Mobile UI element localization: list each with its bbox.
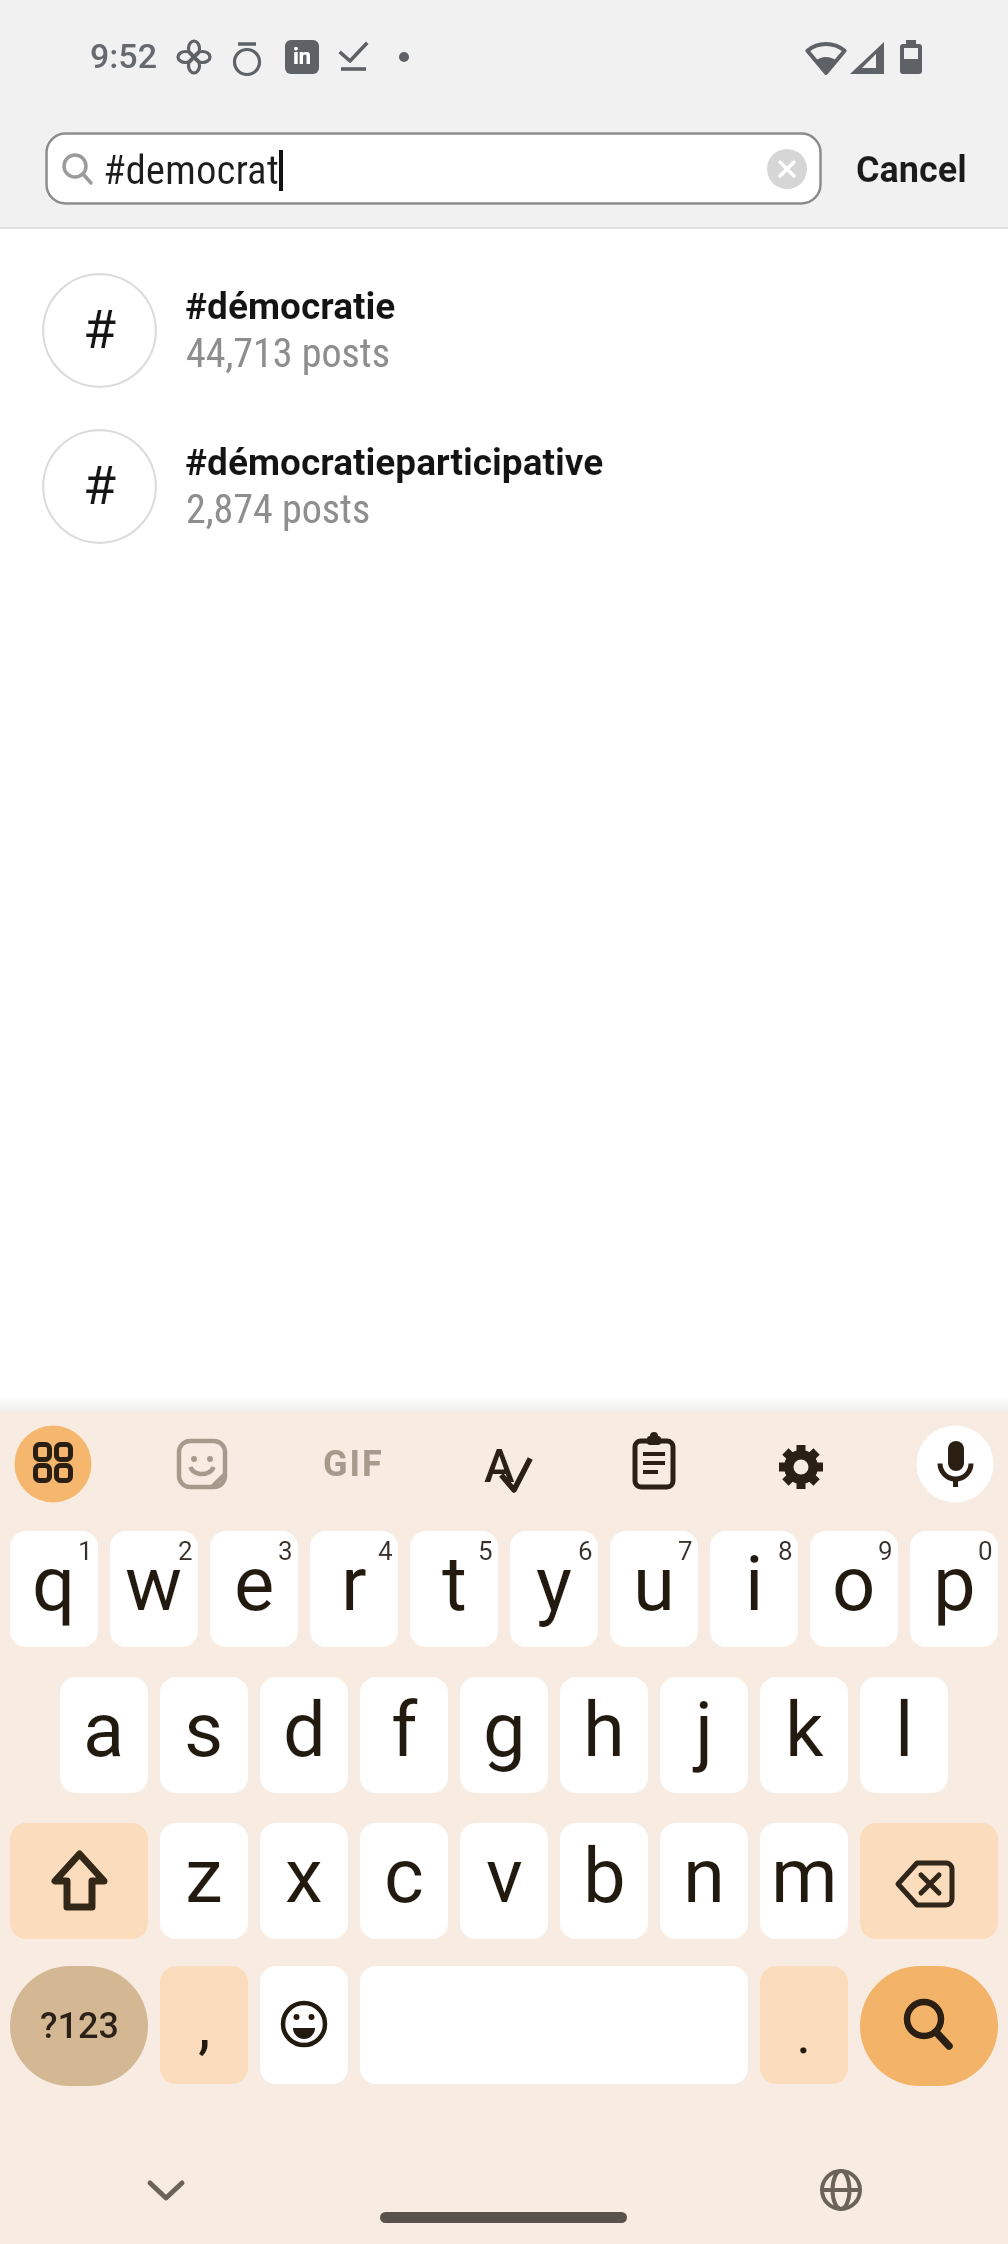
button[interactable]: r — [310, 1531, 398, 1647]
staticText: GIF — [323, 1443, 384, 1485]
staticText: A — [484, 1439, 515, 1493]
button[interactable] — [158, 1420, 246, 1508]
staticText: x — [285, 1831, 323, 1920]
staticText: 9:52 — [90, 36, 157, 76]
staticText: 9 — [878, 1536, 893, 1566]
staticText: v — [486, 1831, 523, 1920]
staticText: u — [633, 1539, 675, 1628]
staticText: 5 — [478, 1536, 493, 1566]
staticText: 44,713 posts — [186, 330, 390, 377]
staticText: p — [933, 1539, 976, 1628]
staticText: 6 — [578, 1536, 593, 1566]
button[interactable]: y — [510, 1531, 598, 1647]
staticText: . — [796, 1999, 812, 2067]
staticText: a — [83, 1685, 125, 1774]
staticText: # — [83, 298, 117, 361]
staticText: z — [185, 1831, 223, 1920]
staticText: r — [341, 1539, 367, 1628]
button[interactable]: i — [710, 1531, 798, 1647]
staticText: j — [695, 1685, 714, 1774]
button[interactable]: g — [460, 1677, 548, 1793]
button[interactable] — [911, 1420, 999, 1508]
staticText: w — [125, 1539, 183, 1628]
staticText: q — [32, 1539, 76, 1628]
staticText: #démocratie — [185, 285, 396, 328]
staticText: 2,874 posts — [186, 486, 371, 533]
button[interactable]: c — [360, 1823, 448, 1939]
button[interactable]: l — [860, 1677, 948, 1793]
staticText: # — [83, 454, 117, 517]
button[interactable] — [45, 132, 822, 205]
staticText: 3 — [278, 1536, 293, 1566]
button[interactable]: e — [210, 1531, 298, 1647]
staticText: #démocratieparticipative — [185, 441, 604, 484]
button[interactable]: h — [560, 1677, 648, 1793]
button[interactable]: f — [360, 1677, 448, 1793]
button[interactable] — [10, 1823, 148, 1939]
button[interactable]: z — [160, 1823, 248, 1939]
button[interactable] — [610, 1420, 698, 1508]
button[interactable]: m — [760, 1823, 848, 1939]
staticText: i — [745, 1539, 764, 1628]
button[interactable]: . — [760, 1966, 848, 2084]
staticText: d — [283, 1685, 326, 1774]
staticText: 2 — [178, 1536, 193, 1566]
staticText: 1 — [78, 1536, 93, 1566]
staticText: m — [771, 1831, 838, 1920]
staticText: #democrat — [103, 146, 279, 194]
button[interactable]: ?123 — [10, 1966, 148, 2086]
button[interactable]: # — [0, 252, 1008, 408]
button[interactable] — [9, 1420, 97, 1508]
button[interactable]: Cancel — [840, 135, 980, 201]
button[interactable]: b — [560, 1823, 648, 1939]
staticText: y — [536, 1539, 572, 1628]
button[interactable]: x — [260, 1823, 348, 1939]
button[interactable] — [260, 1966, 348, 2084]
staticText: b — [583, 1831, 626, 1920]
staticText: t — [442, 1539, 467, 1628]
button[interactable]: a — [60, 1677, 148, 1793]
button[interactable]: v — [460, 1823, 548, 1939]
staticText: f — [391, 1685, 418, 1774]
staticText: o — [832, 1539, 876, 1628]
button[interactable]: o — [810, 1531, 898, 1647]
button[interactable] — [761, 1420, 849, 1508]
button[interactable] — [801, 2150, 881, 2230]
button[interactable]: GIF — [309, 1420, 397, 1508]
button[interactable]: t — [410, 1531, 498, 1647]
staticText: 8 — [778, 1536, 793, 1566]
staticText: in — [293, 44, 312, 70]
button[interactable]: j — [660, 1677, 748, 1793]
staticText: n — [683, 1831, 725, 1920]
button[interactable] — [126, 2150, 206, 2230]
staticText: , — [198, 1988, 211, 2063]
button[interactable]: q — [10, 1531, 98, 1647]
button[interactable]: # — [0, 408, 1008, 564]
staticText: g — [483, 1685, 526, 1774]
button[interactable]: w — [110, 1531, 198, 1647]
staticText: e — [234, 1539, 275, 1628]
staticText: h — [583, 1685, 625, 1774]
staticText: 7 — [678, 1536, 693, 1566]
button[interactable]: p — [910, 1531, 998, 1647]
staticText: 4 — [378, 1536, 393, 1566]
button[interactable]: d — [260, 1677, 348, 1793]
staticText: ?123 — [40, 2005, 119, 2047]
staticText: 0 — [978, 1536, 993, 1566]
button[interactable]: s — [160, 1677, 248, 1793]
staticText: c — [384, 1831, 424, 1920]
button[interactable] — [860, 1966, 998, 2086]
button[interactable]: k — [760, 1677, 848, 1793]
button[interactable]: , — [160, 1966, 248, 2084]
staticText: s — [184, 1685, 224, 1774]
staticText: l — [895, 1685, 914, 1774]
button[interactable]: n — [660, 1823, 748, 1939]
staticText: k — [785, 1685, 824, 1774]
button[interactable]: u — [610, 1531, 698, 1647]
button[interactable]: A — [460, 1420, 548, 1508]
button[interactable] — [860, 1823, 998, 1939]
button[interactable] — [765, 147, 809, 191]
staticText: Cancel — [856, 149, 967, 191]
